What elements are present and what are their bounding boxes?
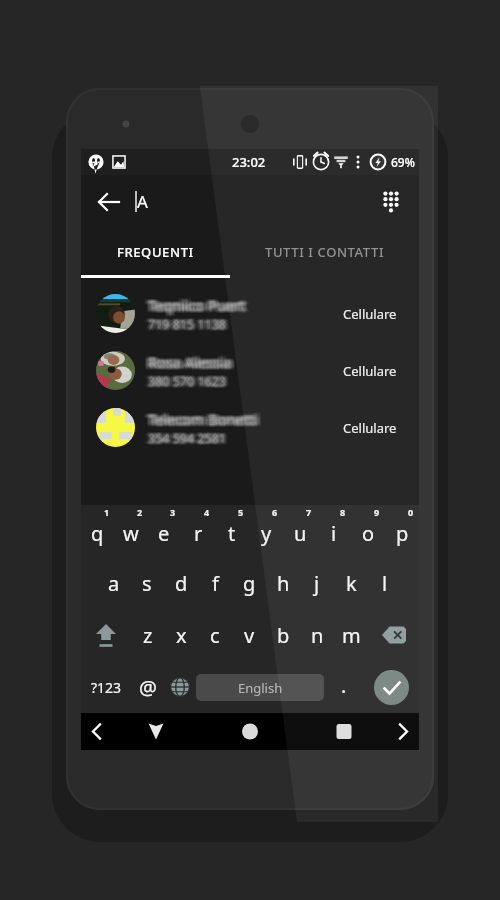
staticText: 9 <box>374 506 380 518</box>
button[interactable]: w <box>114 505 147 557</box>
button[interactable]: TUTTI I CONTATTI <box>230 228 419 275</box>
staticText: 6 <box>272 506 278 518</box>
staticText: Telecom Bonetti <box>145 407 255 427</box>
button[interactable]: j <box>300 557 334 609</box>
button[interactable]: s <box>130 557 164 609</box>
staticText: 354 594 2581 <box>144 430 223 447</box>
button[interactable]: n <box>300 609 334 661</box>
staticText: 719 815 1138 <box>145 317 224 334</box>
staticText: Telecom Bonetti <box>149 408 259 428</box>
staticText: 354 594 2581 <box>150 431 229 448</box>
button[interactable]: l <box>368 557 402 609</box>
button[interactable]: b <box>266 609 300 661</box>
staticText: 380 570 1623 <box>149 373 228 390</box>
staticText: 354 594 2581 <box>151 431 230 448</box>
staticText: Telecom Bonetti <box>151 411 261 431</box>
staticText: l <box>382 570 388 597</box>
button[interactable]: f <box>198 557 232 609</box>
staticText: Telecom Bonetti <box>148 409 258 429</box>
staticText: 719 815 1138 <box>148 317 227 334</box>
button[interactable]: u <box>283 505 317 557</box>
staticText: e <box>158 520 170 547</box>
button[interactable]: p <box>385 505 419 557</box>
staticText: 354 594 2581 <box>148 431 227 448</box>
staticText: 719 815 1138 <box>146 314 225 331</box>
button[interactable]: z <box>131 609 164 661</box>
staticText: 719 815 1138 <box>149 316 228 333</box>
button[interactable]: . <box>324 661 363 713</box>
staticText: 354 594 2581 <box>149 431 228 448</box>
staticText: Rosa Alessia <box>150 351 234 371</box>
staticText: 719 815 1138 <box>148 315 227 332</box>
staticText: @ <box>139 674 157 701</box>
staticText: 719 815 1138 <box>147 316 226 333</box>
button[interactable]: @ <box>132 661 164 713</box>
staticText: 69% <box>391 154 415 170</box>
button[interactable]: t <box>215 505 249 557</box>
staticText: 380 570 1623 <box>151 373 230 390</box>
staticText: 380 570 1623 <box>148 374 227 391</box>
button[interactable]: Back <box>87 180 131 224</box>
staticText: 380 570 1623 <box>151 374 230 391</box>
button[interactable]: v <box>232 609 266 661</box>
button[interactable]: c <box>198 609 232 661</box>
staticText: Rosa Alessia <box>150 352 234 372</box>
staticText: 5 <box>238 506 244 518</box>
staticText: 380 570 1623 <box>150 372 229 389</box>
staticText: Teqniico Puert <box>151 293 249 313</box>
staticText: 380 570 1623 <box>148 372 227 389</box>
staticText: 380 570 1623 <box>145 373 224 390</box>
staticText: Telecom Bonetti <box>151 409 261 429</box>
button[interactable]: Rosa Alessia <box>81 342 419 399</box>
button[interactable]: y <box>249 505 283 557</box>
button[interactable]: h <box>266 557 300 609</box>
button[interactable]: English <box>196 674 324 701</box>
staticText: 380 570 1623 <box>147 374 226 391</box>
button[interactable]: FREQUENTI <box>81 228 230 275</box>
staticText: 380 570 1623 <box>152 373 231 390</box>
staticText: Rosa Alessia <box>147 351 231 371</box>
staticText: 8 <box>340 506 346 518</box>
staticText: 719 815 1138 <box>149 314 228 331</box>
staticText: 354 594 2581 <box>149 429 228 446</box>
staticText: 7 <box>306 506 312 518</box>
staticText: 2 <box>137 506 143 518</box>
button[interactable]: Telecom Bonetti <box>81 399 419 456</box>
staticText: 719 815 1138 <box>147 316 226 333</box>
button[interactable]: q <box>81 505 114 557</box>
button[interactable]: k <box>334 557 368 609</box>
button[interactable]: Shift <box>81 609 131 661</box>
staticText: TUTTI I CONTATTI <box>265 243 385 261</box>
button[interactable]: e <box>147 505 181 557</box>
button[interactable]: Backspace <box>368 609 419 661</box>
button[interactable]: m <box>334 609 368 661</box>
staticText: Rosa Alessia <box>149 353 233 373</box>
staticText: 380 570 1623 <box>148 373 227 390</box>
button[interactable]: Dial pad <box>369 180 413 224</box>
button[interactable]: Teqniico Puert <box>81 285 419 342</box>
button[interactable]: g <box>232 557 266 609</box>
button[interactable]: x <box>164 609 198 661</box>
staticText: FREQUENTI <box>117 243 194 261</box>
staticText: 719 815 1138 <box>148 315 227 332</box>
staticText: 354 594 2581 <box>146 428 225 445</box>
staticText: Teqniico Puert <box>147 297 245 317</box>
staticText: 380 570 1623 <box>150 371 229 388</box>
staticText: Rosa Alessia <box>150 353 234 373</box>
staticText: Rosa Alessia <box>144 351 228 371</box>
button[interactable]: ?123 <box>81 661 132 713</box>
button[interactable]: d <box>164 557 198 609</box>
staticText: Rosa Alessia <box>145 353 229 373</box>
staticText: 354 594 2581 <box>149 430 228 447</box>
button[interactable]: i <box>317 505 351 557</box>
staticText: 380 570 1623 <box>150 375 229 392</box>
staticText: Telecom Bonetti <box>148 409 258 429</box>
button[interactable]: r <box>181 505 215 557</box>
staticText: 380 570 1623 <box>150 374 229 391</box>
button[interactable]: Enter <box>363 661 419 713</box>
button[interactable]: o <box>351 505 385 557</box>
button[interactable]: Change language <box>164 661 196 713</box>
button[interactable]: a <box>97 557 130 609</box>
staticText: 3 <box>170 506 176 518</box>
staticText: a <box>108 570 120 597</box>
